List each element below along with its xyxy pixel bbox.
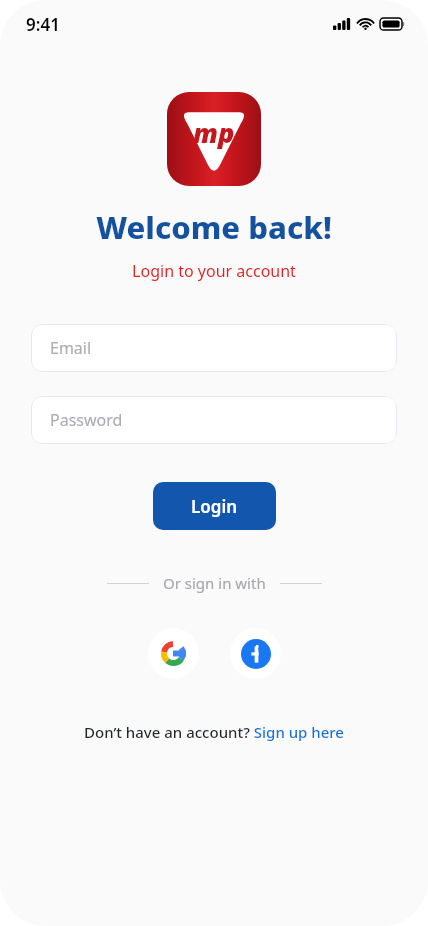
staticText: mp <box>193 114 235 151</box>
staticText: Don’t have an account? Sign up here <box>84 722 344 742</box>
staticText: Or sign in with <box>163 573 266 593</box>
button[interactable]: Don’t have an account? Sign up here <box>0 722 428 742</box>
button[interactable]: Email <box>31 324 397 372</box>
staticText: 9:41 <box>26 13 60 36</box>
button[interactable]: Password <box>31 396 397 444</box>
button[interactable]: Sign in with Google <box>148 628 199 679</box>
staticText: Welcome back! <box>96 206 332 248</box>
button[interactable]: App logo <box>167 92 261 186</box>
staticText: Email <box>50 337 92 359</box>
staticText: Password <box>50 409 123 431</box>
staticText: Login to your account <box>132 260 296 282</box>
button[interactable]: Login <box>153 482 276 530</box>
staticText: Login <box>191 495 238 518</box>
button[interactable]: Sign in with Facebook <box>230 628 281 679</box>
